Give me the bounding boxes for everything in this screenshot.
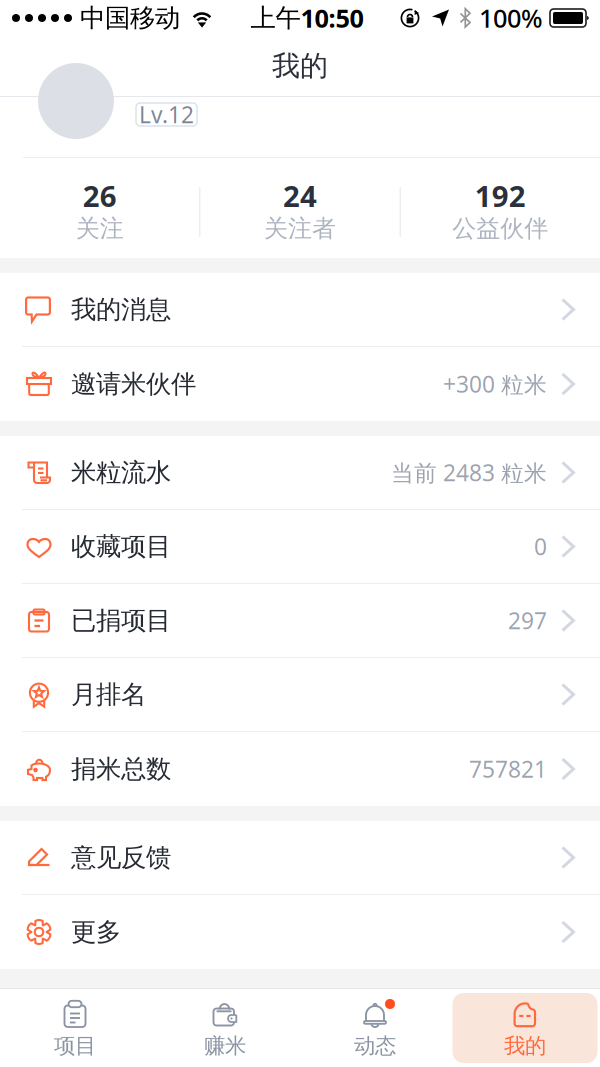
staticText: +300 粒米 xyxy=(443,369,547,399)
staticText: 297 xyxy=(508,605,547,635)
staticText: 关注 xyxy=(76,214,124,243)
staticText: 24 xyxy=(283,176,317,215)
button[interactable]: 月排名 xyxy=(0,658,600,732)
button[interactable]: 我的消息 xyxy=(0,273,600,347)
staticText: 邀请米伙伴 xyxy=(71,368,196,399)
staticText: 公益伙伴 xyxy=(452,214,548,243)
staticText: 已捐项目 xyxy=(71,605,171,636)
staticText: 关注者 xyxy=(264,214,336,243)
staticText: 26 xyxy=(83,176,117,215)
button[interactable]: 我的 xyxy=(450,993,600,1063)
staticText: 0 xyxy=(534,531,547,561)
button[interactable]: 动态 xyxy=(300,993,450,1063)
button[interactable]: 更多 xyxy=(0,895,600,969)
staticText: 192 xyxy=(475,176,526,215)
staticText: 当前 2483 粒米 xyxy=(391,457,547,487)
staticText: 757821 xyxy=(469,754,547,784)
staticText: Lv.12 xyxy=(139,99,194,129)
staticText: 月排名 xyxy=(71,679,146,710)
button[interactable]: 收藏项目 xyxy=(0,510,600,584)
button[interactable]: 意见反馈 xyxy=(0,821,600,895)
staticText: 100% xyxy=(479,1,543,35)
staticText: 动态 xyxy=(354,1033,396,1059)
button[interactable]: 邀请米伙伴 xyxy=(0,347,600,421)
staticText: 我的 xyxy=(504,1033,546,1059)
staticText: 我的 xyxy=(272,49,328,83)
staticText: 赚米 xyxy=(204,1033,246,1059)
staticText: 中国移动 xyxy=(80,2,180,33)
staticText: 米粒流水 xyxy=(71,457,171,488)
button[interactable]: 捐米总数 xyxy=(0,732,600,806)
button[interactable]: 已捐项目 xyxy=(0,584,600,658)
staticText: 项目 xyxy=(54,1033,96,1059)
staticText: 我的消息 xyxy=(71,294,171,325)
staticText: 意见反馈 xyxy=(71,842,171,873)
button[interactable]: 项目 xyxy=(0,993,150,1063)
staticText: 捐米总数 xyxy=(71,753,171,784)
staticText: 更多 xyxy=(71,916,121,947)
staticText: 收藏项目 xyxy=(71,531,171,562)
staticText: 上午 xyxy=(250,2,300,33)
button[interactable]: 米粒流水 xyxy=(0,436,600,510)
button[interactable]: 赚米 xyxy=(150,993,300,1063)
staticText: 10:50 xyxy=(300,1,363,35)
